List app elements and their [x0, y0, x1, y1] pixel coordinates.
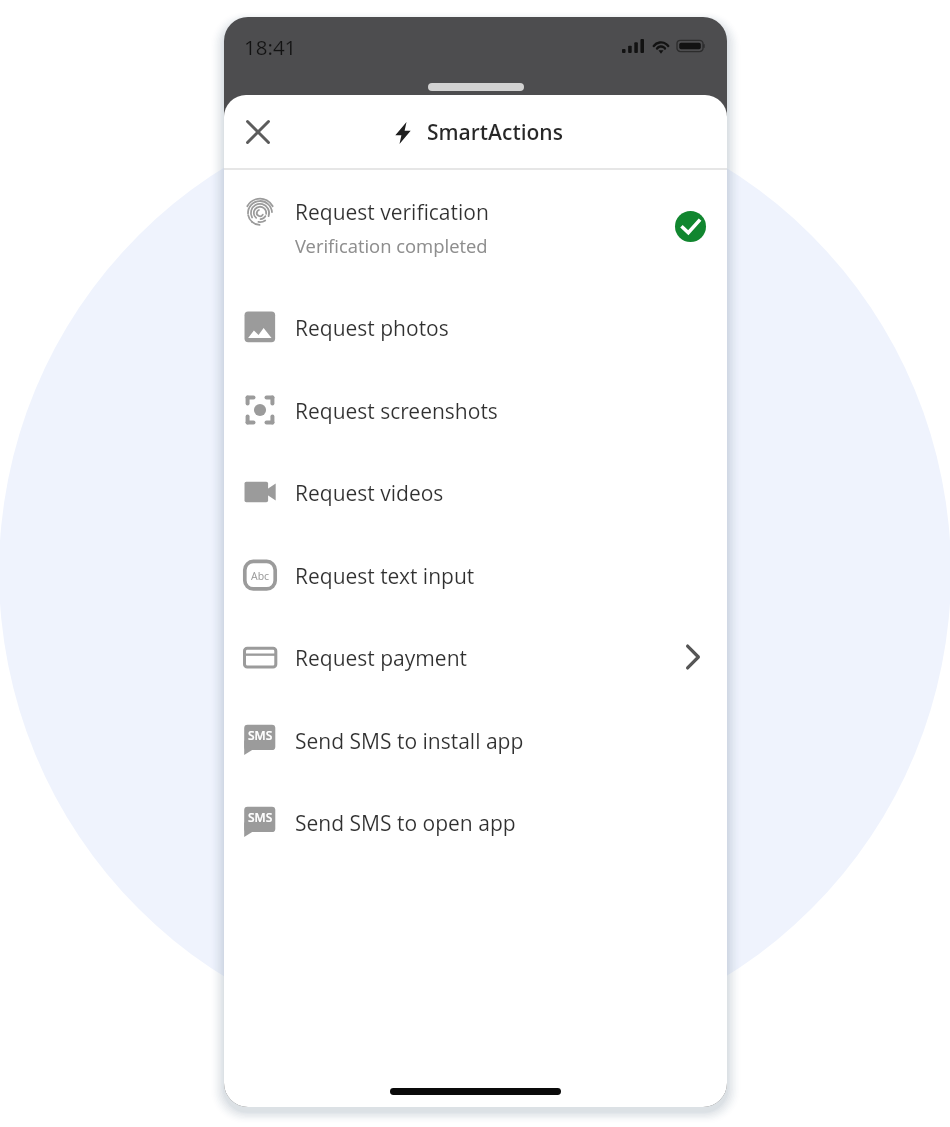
staticText: SMS: [248, 727, 273, 743]
staticText: Request verification: [295, 198, 489, 227]
button[interactable]: Request videos: [224, 452, 727, 534]
button[interactable]: Request payment: [224, 617, 727, 699]
button[interactable]: SMS: [224, 700, 727, 782]
staticText: SmartActions: [427, 118, 563, 147]
button[interactable]: SMS: [224, 782, 727, 864]
staticText: Request photos: [295, 314, 449, 343]
button[interactable]: Request photos: [224, 287, 727, 369]
staticText: Send SMS to open app: [295, 809, 516, 838]
staticText: Request text input: [295, 562, 475, 591]
staticText: Request screenshots: [295, 397, 498, 426]
button[interactable]: Request verification: [224, 170, 727, 287]
staticText: 18:41: [244, 33, 297, 61]
staticText: Abc: [251, 569, 270, 583]
staticText: Request videos: [295, 479, 444, 508]
button[interactable]: Close: [234, 108, 282, 156]
button[interactable]: Abc: [224, 535, 727, 617]
staticText: Request payment: [295, 644, 467, 673]
button[interactable]: Request screenshots: [224, 370, 727, 452]
staticText: SMS: [248, 809, 273, 825]
staticText: Verification completed: [295, 233, 488, 258]
staticText: Send SMS to install app: [295, 727, 524, 756]
